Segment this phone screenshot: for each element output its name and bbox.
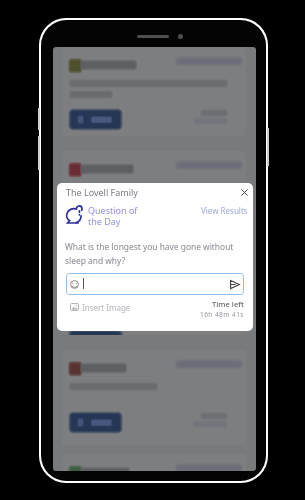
staticText: Insert Image	[82, 302, 131, 313]
staticText: What is the longest you have gone withou…	[65, 241, 234, 266]
button[interactable]: Close	[235, 183, 253, 202]
button[interactable]	[62, 151, 246, 335]
button[interactable]	[62, 47, 246, 136]
staticText: View Results	[201, 205, 248, 216]
staticText: Time left	[212, 299, 244, 309]
button[interactable]: View Results	[200, 202, 248, 218]
button[interactable]	[62, 454, 246, 471]
button[interactable]: Insert Image	[70, 300, 131, 314]
staticText: Question of the Day	[88, 204, 138, 228]
staticText: The Lovell Family	[66, 186, 138, 198]
button[interactable]: Send	[225, 273, 244, 295]
staticText: 16h 48m 41s	[200, 310, 244, 319]
button[interactable]	[66, 273, 244, 295]
button[interactable]	[62, 350, 246, 445]
